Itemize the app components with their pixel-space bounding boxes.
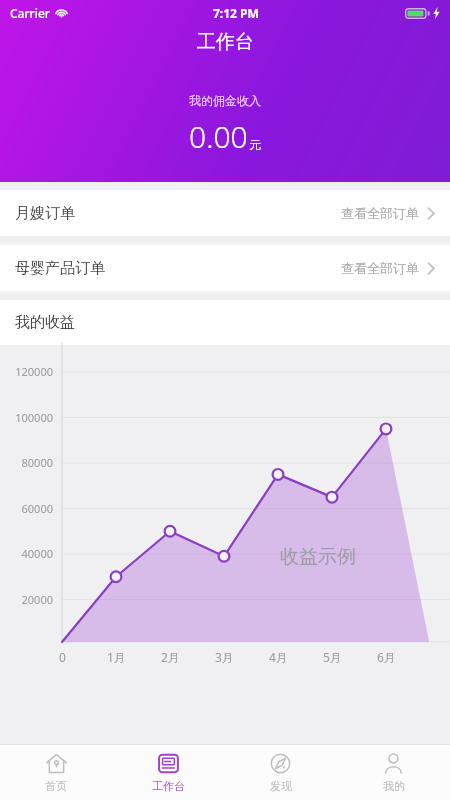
staticText: 母婴产品订单 [15,259,105,278]
staticText: 4月 [269,649,288,665]
button[interactable]: 母婴产品订单 [0,245,450,291]
staticText: 80000 [0,455,53,470]
staticText: 6月 [377,649,396,665]
staticText: 我的佣金收入 [189,93,261,108]
staticText: 40000 [0,546,53,561]
staticText: 20000 [0,592,53,607]
staticText: Carrier [10,5,50,21]
button[interactable]: 月嫂订单 [0,190,450,236]
staticText: 5月 [323,649,342,665]
staticText: 100000 [0,410,53,425]
staticText: 元 [249,137,261,152]
staticText: 0.00 [189,116,248,157]
staticText: 工作台 [197,30,254,54]
staticText: 1月 [107,649,126,665]
button[interactable]: 首页 [0,745,112,800]
staticText: 120000 [0,364,53,379]
staticText: 查看全部订单 [341,260,419,276]
staticText: 查看全部订单 [341,205,419,221]
staticText: 收益示例 [280,545,356,569]
button[interactable]: 发现 [224,745,337,800]
staticText: 我的 [383,779,405,793]
staticText: 3月 [215,649,234,665]
staticText: 60000 [0,501,53,516]
staticText: 工作台 [152,779,185,793]
staticText: 2月 [161,649,180,665]
staticText: 发现 [270,779,292,793]
button[interactable]: 工作台 [112,745,224,800]
staticText: 我的收益 [15,313,75,332]
button[interactable]: 我的 [337,745,450,800]
staticText: 月嫂订单 [15,204,75,223]
staticText: 7:12 PM [213,5,259,21]
staticText: 0 [59,649,66,665]
staticText: 首页 [45,779,67,793]
